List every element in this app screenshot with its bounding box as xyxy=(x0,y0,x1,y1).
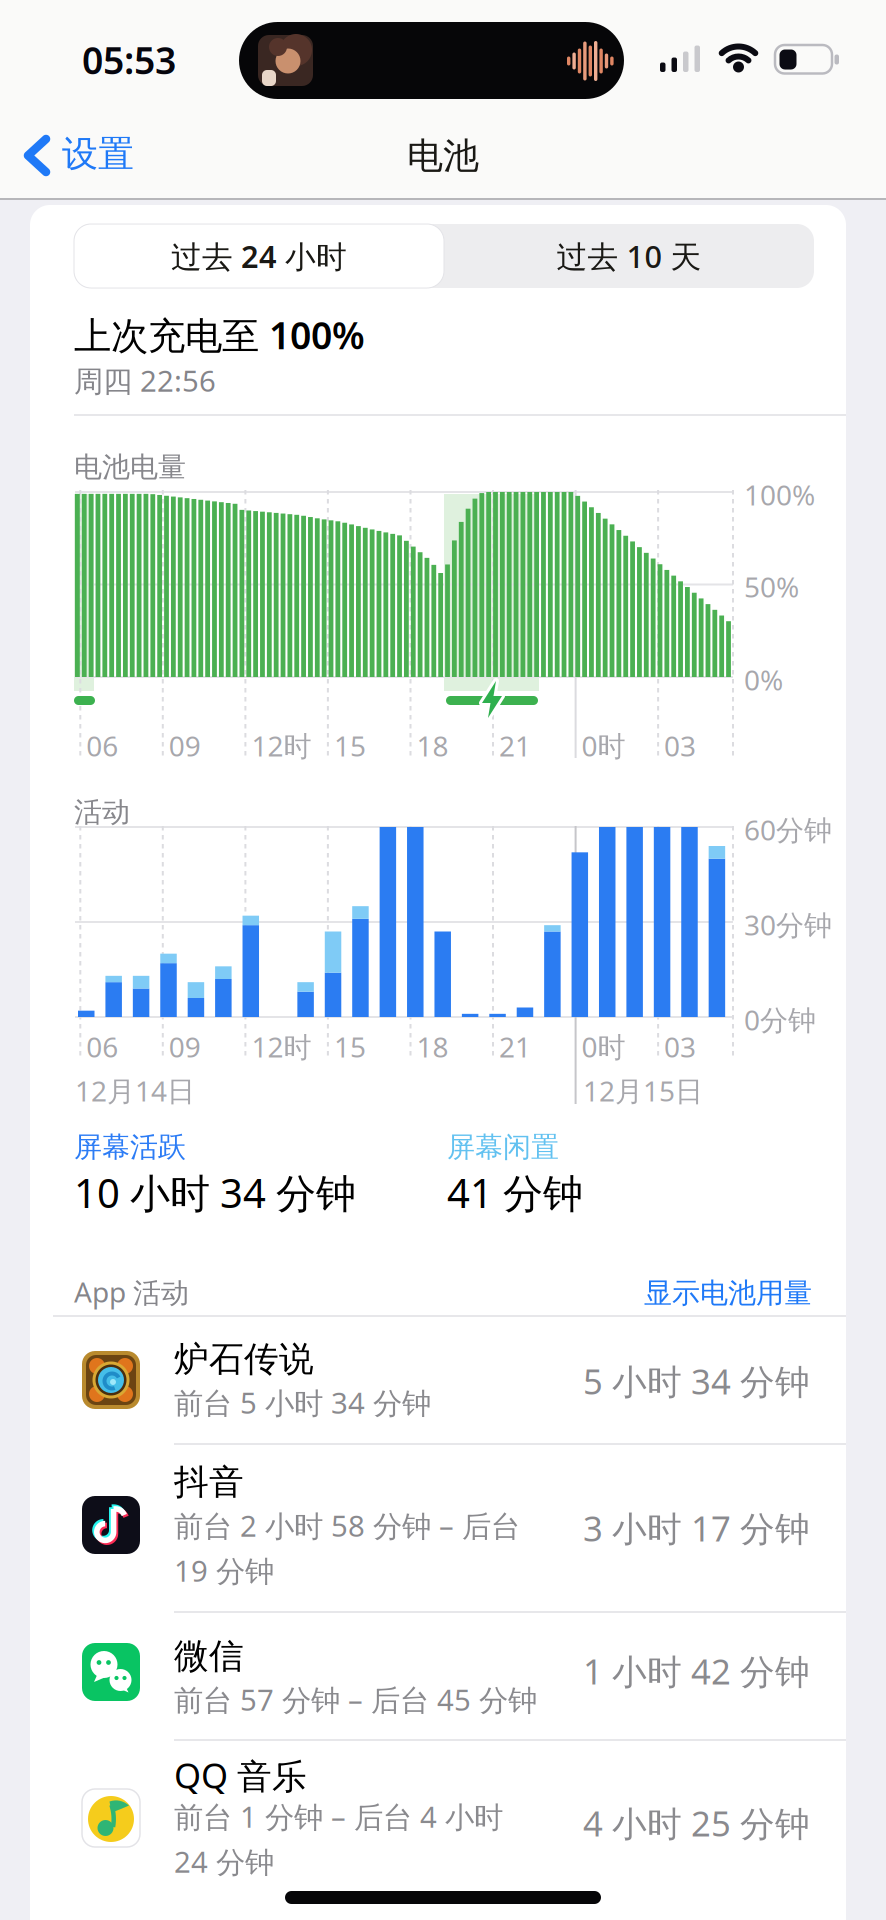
staticText: 电池 xyxy=(407,134,479,178)
staticText: 抖音 xyxy=(174,1461,244,1504)
staticText: 前台 57 分钟 – 后台 45 分钟 xyxy=(174,1680,537,1719)
staticText: 18 xyxy=(416,727,448,764)
staticText: 前台 5 小时 34 分钟 xyxy=(174,1383,431,1422)
staticText: 50% xyxy=(744,568,799,605)
staticText: 10 小时 34 分钟 xyxy=(74,1166,356,1219)
staticText: App 活动 xyxy=(74,1273,189,1310)
staticText: 05:53 xyxy=(82,35,176,85)
staticText: 过去 10 天 xyxy=(556,236,701,276)
staticText: 100% xyxy=(744,476,815,513)
staticText: 前台 2 小时 58 分钟 – 后台 xyxy=(174,1506,520,1545)
staticText: 03 xyxy=(664,727,696,764)
button[interactable]: 炉石传说 xyxy=(30,1316,846,1444)
button[interactable]: 设置 xyxy=(24,137,154,181)
staticText: 0% xyxy=(744,661,783,698)
button[interactable]: 抖音 xyxy=(30,1444,846,1612)
staticText: 4 小时 25 分钟 xyxy=(583,1800,810,1846)
staticText: 1 小时 42 分钟 xyxy=(583,1648,810,1694)
button[interactable]: 过去 10 天 xyxy=(444,224,814,288)
staticText: 24 分钟 xyxy=(174,1842,274,1881)
staticText: 0时 xyxy=(582,1028,626,1065)
staticText: 显示电池用量 xyxy=(644,1276,812,1310)
staticText: 41 分钟 xyxy=(447,1166,583,1219)
button[interactable]: 过去 24 小时 xyxy=(74,224,444,288)
button[interactable]: 微信 xyxy=(30,1612,846,1740)
staticText: 活动 xyxy=(74,795,130,829)
staticText: 15 xyxy=(334,1028,366,1065)
staticText: 06 xyxy=(86,1028,118,1065)
staticText: 5 小时 34 分钟 xyxy=(583,1358,810,1404)
staticText: 0时 xyxy=(582,727,626,764)
button[interactable]: QQ 音乐 xyxy=(30,1740,846,1920)
staticText: 前台 1 分钟 – 后台 4 小时 xyxy=(174,1797,503,1836)
staticText: 06 xyxy=(86,727,118,764)
staticText: 设置 xyxy=(62,132,134,176)
staticText: 上次充电至 100% xyxy=(74,310,365,360)
staticText: 12时 xyxy=(251,727,311,764)
staticText: 19 分钟 xyxy=(174,1551,274,1590)
button[interactable]: 显示电池用量 xyxy=(0,0,400,34)
staticText: 12月14日 xyxy=(75,1072,195,1109)
staticText: 屏幕闲置 xyxy=(447,1130,559,1164)
staticText: 12时 xyxy=(251,1028,311,1065)
staticText: 18 xyxy=(416,1028,448,1065)
staticText: 60分钟 xyxy=(744,811,832,848)
staticText: 炉石传说 xyxy=(174,1338,314,1381)
staticText: 12月15日 xyxy=(583,1072,703,1109)
staticText: 30分钟 xyxy=(744,906,832,943)
staticText: 0分钟 xyxy=(744,1001,816,1038)
staticText: 电池电量 xyxy=(74,450,186,484)
staticText: 15 xyxy=(334,727,366,764)
staticText: QQ 音乐 xyxy=(174,1752,307,1798)
staticText: 09 xyxy=(169,727,201,764)
staticText: 09 xyxy=(169,1028,201,1065)
staticText: 03 xyxy=(664,1028,696,1065)
staticText: 3 小时 17 分钟 xyxy=(583,1505,810,1551)
staticText: 微信 xyxy=(174,1635,244,1678)
staticText: 周四 22:56 xyxy=(74,361,216,400)
staticText: 过去 24 小时 xyxy=(171,236,347,276)
staticText: 21 xyxy=(499,727,531,764)
staticText: 21 xyxy=(499,1028,531,1065)
staticText: 屏幕活跃 xyxy=(74,1130,186,1164)
